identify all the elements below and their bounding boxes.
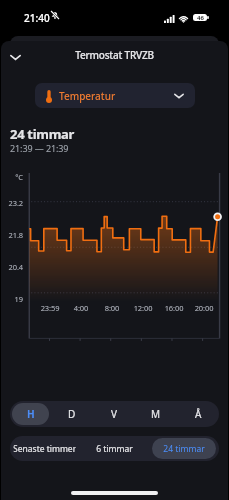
staticText: 12:00 [128, 303, 158, 313]
button[interactable]: 6 timmar [82, 438, 146, 459]
button[interactable]: V [95, 403, 133, 425]
button[interactable]: D [53, 403, 91, 425]
staticText: 46 [197, 14, 204, 21]
staticText: Senaste timmen [13, 443, 76, 455]
staticText: D [68, 407, 76, 421]
staticText: Termostat TRVZB [1, 48, 228, 62]
staticText: 16:00 [159, 303, 189, 313]
staticText: °C [1, 172, 23, 182]
staticText: Temperatur [59, 89, 116, 103]
staticText: 23:59 [35, 303, 65, 313]
button[interactable]: Collapse [3, 45, 27, 69]
staticText: 19 [1, 294, 23, 304]
button[interactable]: Temperatur [35, 83, 195, 108]
button[interactable]: Senaste timmen [13, 438, 76, 459]
staticText: 20.4 [1, 262, 23, 272]
staticText: H [27, 407, 35, 421]
button[interactable]: Å [179, 403, 217, 425]
staticText: 21.8 [1, 230, 23, 240]
staticText: 24 timmar [163, 443, 205, 455]
button[interactable]: 24 timmar [152, 438, 216, 459]
staticText: 20:00 [189, 303, 219, 313]
staticText: 24 timmar [10, 125, 75, 143]
button[interactable]: M [137, 403, 175, 425]
staticText: 23.2 [1, 198, 23, 208]
staticText: 4:00 [66, 303, 96, 313]
staticText: M [151, 407, 161, 421]
staticText: 8:00 [97, 303, 127, 313]
staticText: 21:39 — 21:39 [10, 142, 69, 154]
staticText: 21:40 [24, 11, 50, 25]
button[interactable]: H [12, 403, 49, 425]
staticText: Å [195, 407, 202, 421]
staticText: 6 timmar [96, 443, 133, 455]
staticText: V [111, 407, 117, 421]
